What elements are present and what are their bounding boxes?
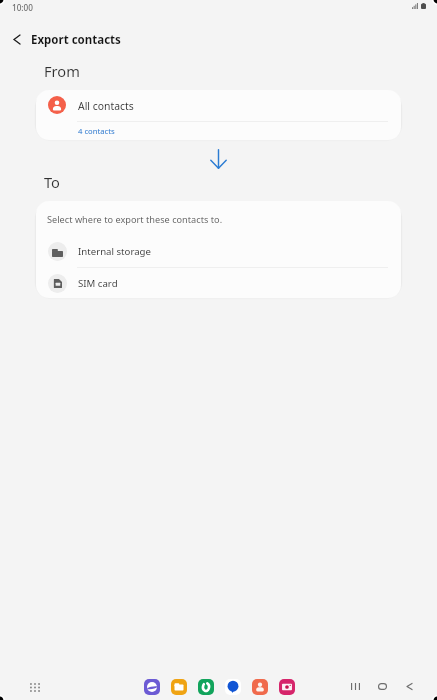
button[interactable]: Back — [398, 675, 420, 697]
button[interactable]: My Files — [171, 679, 187, 695]
staticText: From — [44, 61, 80, 81]
button[interactable]: Home — [371, 675, 393, 697]
button[interactable]: Apps — [24, 677, 45, 698]
staticText: Select where to export these contacts to… — [47, 213, 223, 226]
button[interactable]: Contacts — [252, 679, 268, 695]
button[interactable]: Camera — [279, 679, 295, 695]
button[interactable]: Recents — [344, 675, 366, 697]
button[interactable]: All contacts — [36, 90, 401, 121]
staticText: To — [44, 172, 60, 192]
staticText: Internal storage — [78, 245, 151, 258]
staticText: SIM card — [78, 277, 118, 290]
button[interactable]: SIM card — [36, 267, 401, 298]
staticText: Export contacts — [31, 32, 121, 48]
staticText: 4 contacts — [78, 126, 115, 136]
button[interactable]: Phone — [198, 679, 214, 695]
button[interactable]: Internet — [144, 679, 160, 695]
staticText: All contacts — [78, 99, 134, 113]
button[interactable]: Internal storage — [36, 235, 401, 267]
button[interactable]: Navigate up — [3, 26, 30, 53]
staticText: 10:00 — [12, 2, 33, 13]
button[interactable]: Messages — [225, 679, 241, 695]
